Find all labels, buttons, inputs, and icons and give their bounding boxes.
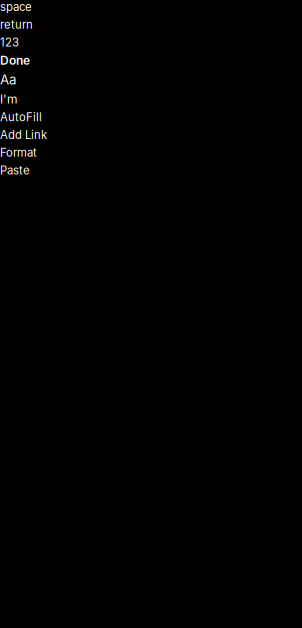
staticText: Done	[0, 53, 30, 68]
staticText: AutoFill	[0, 110, 42, 124]
staticText: space	[0, 0, 32, 14]
staticText: Paste	[0, 163, 30, 177]
staticText: return	[0, 18, 33, 31]
staticText: Add Link	[0, 128, 47, 142]
staticText: Aa	[0, 72, 16, 88]
staticText: Format	[0, 146, 37, 159]
staticText: 123	[0, 35, 19, 49]
staticText: I'm	[0, 92, 18, 106]
